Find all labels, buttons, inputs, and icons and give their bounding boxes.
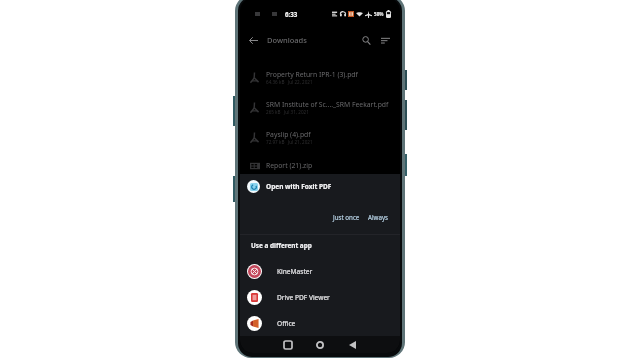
button[interactable]: Property Return IPR-1 (3).pdf	[240, 66, 400, 88]
staticText: 58%	[374, 11, 384, 17]
staticText: Drive PDF Viewer	[277, 293, 330, 302]
button[interactable]: Home	[312, 337, 328, 353]
button[interactable]: Office	[240, 310, 400, 336]
button[interactable]: Open with Foxit PDF	[240, 178, 400, 194]
button[interactable]: SRM Institute of Sc...._SRM Feekart.pdf	[240, 96, 400, 118]
staticText: Always	[368, 213, 389, 221]
staticText: 265 kB Jul 31, 2021	[266, 109, 309, 115]
staticText: Downloads	[267, 35, 307, 45]
staticText: Payslip (4).pdf	[266, 130, 311, 139]
button[interactable]: Just once	[329, 210, 364, 224]
staticText: Open with Foxit PDF	[266, 182, 332, 191]
button[interactable]: KineMaster	[240, 258, 400, 284]
button[interactable]: Back	[344, 337, 360, 353]
staticText: Office	[277, 319, 296, 328]
staticText: Use a different app	[251, 241, 312, 250]
staticText: 64.36 kB Jul 22, 2021	[266, 79, 313, 85]
button[interactable]: Report (21).zip	[240, 154, 400, 176]
button[interactable]: Search	[360, 34, 373, 47]
staticText: SRM Institute of Sc...._SRM Feekart.pdf	[266, 100, 389, 109]
button[interactable]: Always	[364, 210, 393, 224]
staticText: Just once	[333, 213, 360, 221]
staticText: 6:33	[285, 10, 298, 18]
button[interactable]: Back	[247, 34, 260, 47]
staticText: KineMaster	[277, 267, 313, 276]
staticText: Report (21).zip	[266, 161, 313, 170]
button[interactable]: Payslip (4).pdf	[240, 126, 400, 148]
button[interactable]: Sort	[379, 34, 392, 47]
button[interactable]: Recents	[280, 337, 296, 353]
button[interactable]: Drive PDF Viewer	[240, 284, 400, 310]
staticText: Property Return IPR-1 (3).pdf	[266, 70, 358, 79]
staticText: 72.97 kB Jul 21, 2021	[266, 139, 313, 145]
